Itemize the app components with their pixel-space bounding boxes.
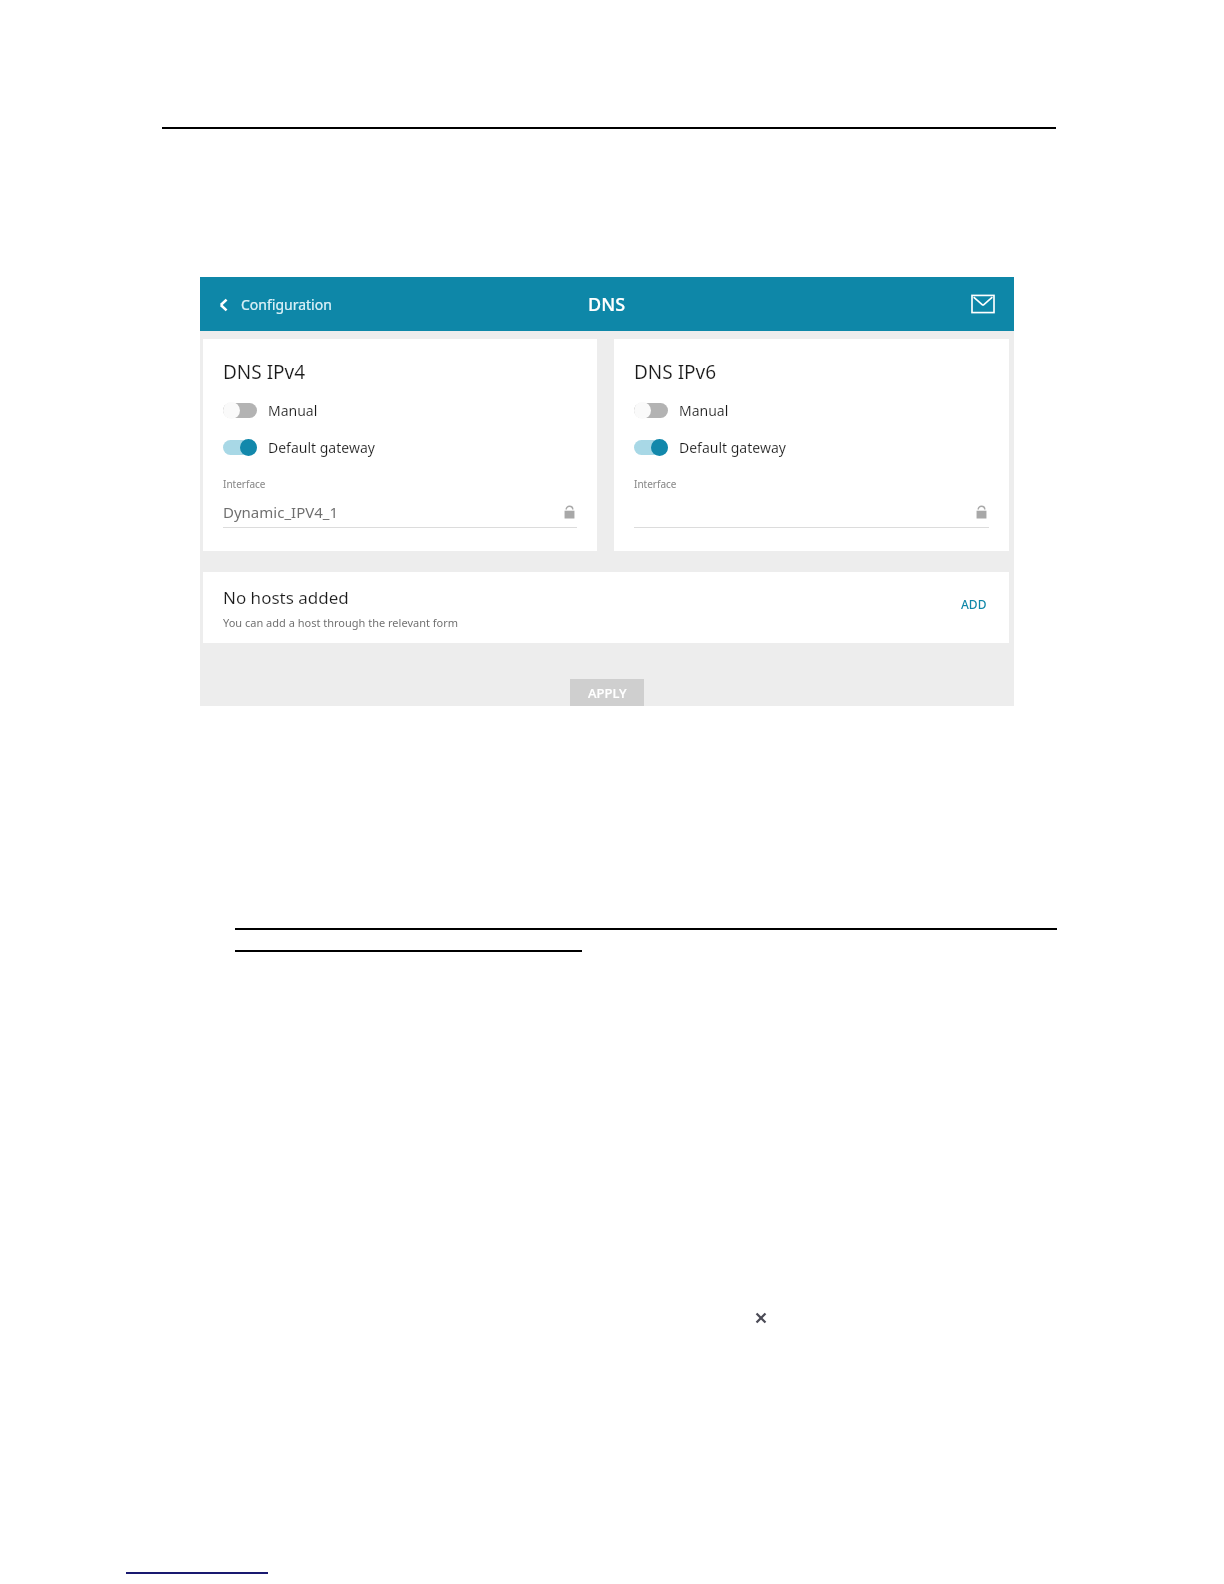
button[interactable]: APPLY <box>570 679 644 706</box>
staticText: APPLY <box>588 684 627 702</box>
staticText: Default gateway <box>679 438 786 457</box>
staticText: DNS IPv4 <box>223 359 306 385</box>
button[interactable]: Configuration <box>212 289 336 320</box>
staticText: Interface <box>634 477 677 491</box>
button[interactable]: Manual <box>223 399 318 422</box>
staticText: Manual <box>268 401 318 420</box>
staticText: Interface <box>223 477 266 491</box>
button[interactable] <box>634 497 989 527</box>
button[interactable]: Default gateway <box>223 436 375 459</box>
staticText: Configuration <box>241 295 332 314</box>
staticText: Default gateway <box>268 438 375 457</box>
button[interactable]: Messages <box>966 287 1000 321</box>
staticText: DNS IPv6 <box>634 359 717 385</box>
staticText: No hosts added <box>223 586 349 609</box>
staticText: Manual <box>679 401 729 420</box>
staticText: DNS <box>588 292 626 317</box>
button[interactable]: ADD <box>957 592 991 616</box>
button[interactable]: Default gateway <box>634 436 786 459</box>
staticText: ADD <box>961 596 987 612</box>
staticText: You can add a host through the relevant … <box>223 615 459 630</box>
staticText: Dynamic_IPV4_1 <box>223 502 339 522</box>
button[interactable]: Dynamic_IPV4_1 <box>223 497 577 527</box>
button[interactable]: Manual <box>634 399 729 422</box>
